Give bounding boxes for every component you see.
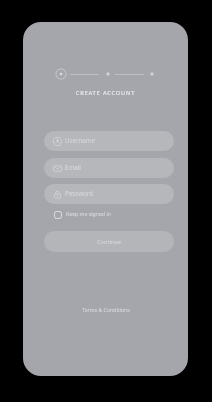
button[interactable]: Keep me signed in <box>54 210 158 220</box>
staticText: Continue <box>97 238 121 246</box>
staticText: CREATE ACCOUNT <box>23 89 188 97</box>
button[interactable]: Step 3 of 3 <box>150 72 154 76</box>
button[interactable]: Terms & Conditions <box>23 306 188 313</box>
button[interactable]: Password <box>44 184 174 204</box>
staticText: Keep me signed in <box>66 210 111 217</box>
button[interactable]: Username <box>44 131 174 151</box>
staticText: Username <box>65 136 96 144</box>
button[interactable]: Step 2 of 3 <box>106 72 110 76</box>
staticText: Terms & Conditions <box>82 306 130 313</box>
button[interactable]: Step 1 of 3, current <box>55 68 67 80</box>
staticText: Password <box>65 189 93 197</box>
button[interactable]: Continue <box>44 231 174 252</box>
staticText: Email <box>65 163 81 171</box>
button[interactable]: Email <box>44 158 174 178</box>
